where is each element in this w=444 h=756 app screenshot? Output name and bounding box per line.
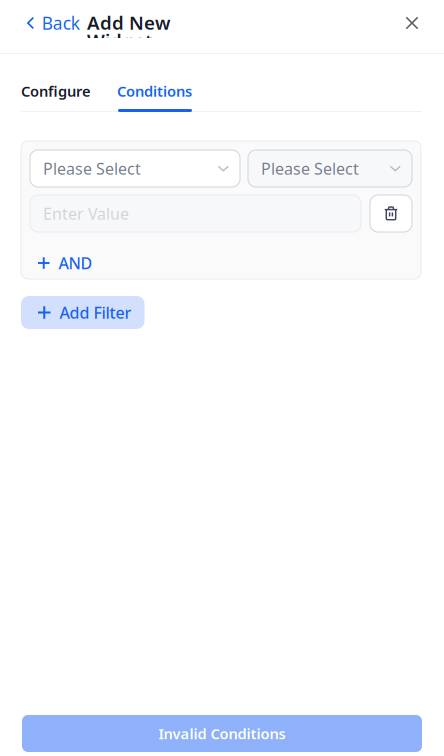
staticText: Add Filter [59, 302, 131, 323]
button[interactable]: Configure [21, 73, 91, 109]
staticText: Enter Value [43, 203, 129, 224]
button[interactable]: Close [392, 3, 432, 43]
button[interactable]: Delete condition [370, 195, 412, 232]
staticText: Add New [87, 10, 170, 35]
staticText: Please Select [43, 158, 141, 179]
staticText: Back [42, 11, 80, 34]
staticText: Please Select [261, 158, 359, 179]
staticText: Invalid Conditions [158, 724, 285, 743]
staticText: AND [58, 252, 92, 274]
button[interactable]: Conditions [117, 73, 192, 109]
staticText: Conditions [117, 81, 192, 101]
button[interactable]: AND [30, 248, 104, 278]
button[interactable]: Add Filter [21, 296, 144, 329]
button[interactable]: Back [0, 3, 92, 43]
button[interactable]: Invalid Conditions [22, 715, 422, 752]
staticText: Widget [87, 28, 153, 53]
staticText: Configure [21, 81, 91, 101]
